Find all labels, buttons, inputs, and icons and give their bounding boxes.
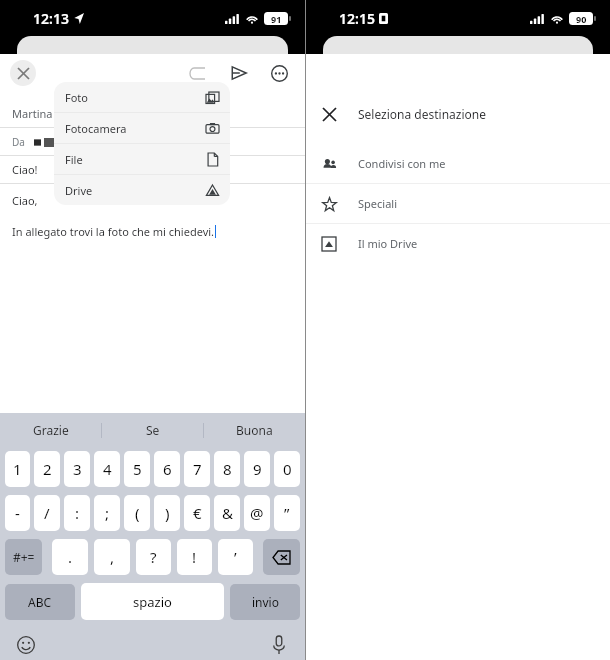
staticText: #+= <box>13 549 35 565</box>
button[interactable]: Cancella <box>263 539 300 575</box>
staticText: ” <box>284 503 290 523</box>
button[interactable]: ABC <box>5 584 75 620</box>
staticText: ? <box>150 547 157 567</box>
staticText: 91 <box>271 13 282 25</box>
staticText: ( <box>135 503 140 523</box>
staticText: 3 <box>73 459 82 479</box>
button[interactable]: ( <box>124 495 150 531</box>
button[interactable]: Drive <box>54 175 230 205</box>
button[interactable]: ? <box>136 539 171 575</box>
staticText: spazio <box>133 593 172 611</box>
staticText: ) <box>165 503 170 523</box>
staticText: Martina O <box>12 106 64 121</box>
staticText: 90 <box>576 13 587 25</box>
button[interactable]: ’ <box>218 539 253 575</box>
staticText: @ <box>250 503 264 523</box>
staticText: Grazie <box>33 422 69 438</box>
button[interactable]: Chiudi <box>10 60 36 86</box>
staticText: 12:13 <box>33 9 69 28</box>
staticText: Seleziona destinazione <box>358 106 487 122</box>
button[interactable]: Il mio Drive <box>306 224 610 263</box>
button[interactable]: 3 <box>64 451 90 487</box>
button[interactable]: #+= <box>5 539 42 575</box>
button[interactable]: / <box>34 495 60 531</box>
staticText: 4 <box>103 459 112 479</box>
button[interactable]: ) <box>154 495 180 531</box>
staticText: Condivisi con me <box>358 156 446 171</box>
staticText: . <box>68 547 73 567</box>
staticText: : <box>75 503 80 523</box>
button[interactable]: Allega <box>183 59 211 87</box>
button[interactable]: 1 <box>5 451 30 487</box>
staticText: & <box>222 503 233 523</box>
button[interactable]: 5 <box>124 451 150 487</box>
button[interactable]: - <box>5 495 30 531</box>
button[interactable]: Dettatura <box>265 631 293 659</box>
button[interactable]: , <box>94 539 130 575</box>
button[interactable]: & <box>214 495 240 531</box>
staticText: Se <box>146 422 160 438</box>
staticText: , <box>110 547 115 567</box>
button[interactable]: 6 <box>154 451 180 487</box>
button[interactable]: 7 <box>184 451 210 487</box>
staticText: Ciao! <box>12 162 38 177</box>
staticText: 7 <box>193 459 202 479</box>
staticText: 2 <box>43 459 52 479</box>
staticText: Buona <box>236 422 273 438</box>
button[interactable]: 4 <box>94 451 120 487</box>
staticText: Fotocamera <box>65 121 127 136</box>
button[interactable]: Fotocamera <box>54 113 230 143</box>
staticText: Foto <box>65 90 88 105</box>
button[interactable]: Altre opzioni <box>265 59 293 87</box>
staticText: 5 <box>133 459 142 479</box>
button[interactable]: ! <box>177 539 212 575</box>
button[interactable]: Invia <box>225 59 253 87</box>
staticText: Speciali <box>358 196 397 211</box>
button[interactable]: Buona <box>204 413 305 447</box>
button[interactable]: ” <box>274 495 300 531</box>
button[interactable]: : <box>64 495 90 531</box>
button[interactable]: Emoji <box>12 631 40 659</box>
staticText: 12:15 <box>339 9 375 28</box>
staticText: Ciao, <box>12 193 38 208</box>
button[interactable]: Seleziona destinazione <box>306 93 610 135</box>
button[interactable]: 9 <box>244 451 270 487</box>
staticText: € <box>193 503 202 523</box>
button[interactable]: 8 <box>214 451 240 487</box>
staticText: 8 <box>223 459 232 479</box>
staticText: 0 <box>283 459 292 479</box>
button[interactable]: . <box>52 539 88 575</box>
staticText: ! <box>192 547 197 567</box>
staticText: 9 <box>253 459 262 479</box>
staticText: - <box>15 503 20 523</box>
staticText: File <box>65 152 83 167</box>
button[interactable]: 2 <box>34 451 60 487</box>
button[interactable]: Grazie <box>0 413 101 447</box>
staticText: Drive <box>65 183 93 198</box>
staticText: / <box>44 503 50 523</box>
button[interactable]: File <box>54 144 230 174</box>
staticText: ’ <box>234 547 237 567</box>
staticText: 6 <box>163 459 172 479</box>
button[interactable]: invio <box>230 584 300 620</box>
button[interactable]: @ <box>244 495 270 531</box>
button[interactable]: ; <box>94 495 120 531</box>
staticText: Il mio Drive <box>358 236 418 251</box>
staticText: ABC <box>28 594 52 610</box>
staticText: In allegato trovi la foto che mi chiedev… <box>12 224 215 239</box>
staticText: Da <box>12 135 25 149</box>
button[interactable]: Foto <box>54 82 230 112</box>
staticText: invio <box>252 594 279 610</box>
button[interactable]: Se <box>102 413 203 447</box>
staticText: 1 <box>13 459 22 479</box>
button[interactable]: Speciali <box>306 184 610 223</box>
button[interactable]: Condivisi con me <box>306 144 610 183</box>
button[interactable]: € <box>184 495 210 531</box>
button[interactable]: 0 <box>274 451 300 487</box>
button[interactable]: spazio <box>81 583 224 620</box>
staticText: ; <box>105 503 110 523</box>
